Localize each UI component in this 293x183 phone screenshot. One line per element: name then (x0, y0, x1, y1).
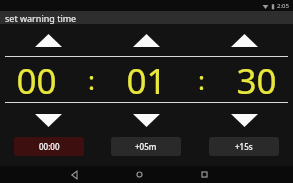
staticText: 01 (126, 57, 167, 102)
staticText: 2:05 (277, 2, 289, 10)
button[interactable]: 00:00 (14, 137, 84, 156)
button[interactable]: Back (63, 166, 87, 183)
button[interactable]: Increase seconds (195, 27, 293, 53)
button[interactable]: Increase minutes (97, 27, 195, 53)
button[interactable]: Increase hours (0, 27, 97, 53)
button[interactable]: +05m (111, 137, 181, 156)
button[interactable]: Decrease hours (0, 107, 97, 133)
button[interactable]: Home (127, 166, 151, 183)
staticText: 30 (236, 57, 277, 102)
staticText: +15s (235, 141, 253, 152)
staticText: : (198, 62, 205, 97)
button[interactable]: +15s (209, 137, 279, 156)
staticText: +05m (135, 141, 157, 152)
staticText: 00 (16, 57, 57, 102)
button[interactable]: Decrease minutes (97, 107, 195, 133)
button[interactable]: Recents (192, 166, 216, 183)
button[interactable]: Decrease seconds (195, 107, 293, 133)
staticText: 00:00 (39, 141, 60, 152)
staticText: set warning time (5, 12, 77, 24)
staticText: : (88, 62, 95, 97)
